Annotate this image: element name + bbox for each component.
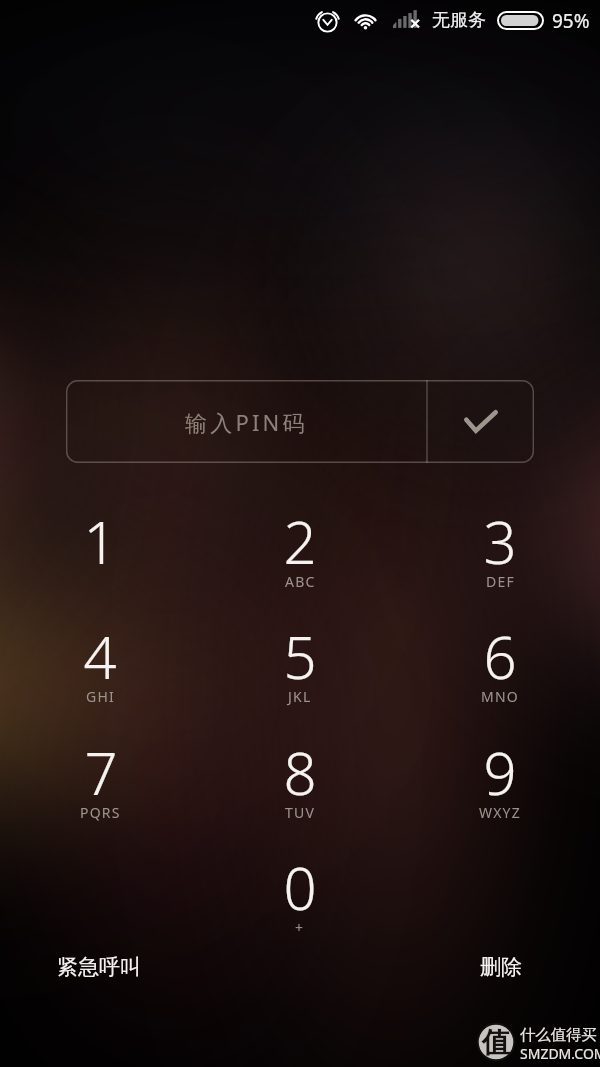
staticText: 2 xyxy=(283,502,317,581)
button[interactable]: Confirm PIN xyxy=(427,380,534,463)
button[interactable]: 9 xyxy=(400,729,600,844)
staticText: 3 xyxy=(483,502,517,581)
staticText: 9 xyxy=(483,733,517,812)
staticText: 无服务 xyxy=(432,9,486,32)
staticText: 95% xyxy=(552,8,590,34)
staticText: JKL xyxy=(288,687,312,706)
staticText: SMZDM.COM xyxy=(520,1044,600,1063)
staticText: 删除 xyxy=(480,954,522,980)
button[interactable]: 2 xyxy=(200,498,400,613)
button[interactable]: 5 xyxy=(200,613,400,728)
button[interactable]: 紧急呼叫 xyxy=(45,944,153,990)
button[interactable]: 1 xyxy=(0,498,200,613)
staticText: 什么值得买 xyxy=(520,1025,597,1045)
button[interactable]: 3 xyxy=(400,498,600,613)
staticText: 紧急呼叫 xyxy=(57,954,141,980)
staticText: 0 xyxy=(283,848,317,927)
staticText: GHI xyxy=(86,687,115,706)
staticText: 输入PIN码 xyxy=(185,407,308,437)
staticText: 1 xyxy=(83,502,117,581)
staticText: 4 xyxy=(83,617,117,696)
button[interactable]: 8 xyxy=(200,729,400,844)
staticText: 5 xyxy=(283,617,317,696)
button[interactable]: 删除 xyxy=(468,944,534,990)
staticText: PQRS xyxy=(80,803,121,822)
staticText: TUV xyxy=(285,803,316,822)
staticText: DEF xyxy=(486,572,515,591)
staticText: + xyxy=(295,918,305,937)
staticText: 7 xyxy=(84,733,118,812)
button[interactable]: 0 xyxy=(200,844,400,959)
staticText: 值 xyxy=(482,1025,510,1060)
staticText: 6 xyxy=(483,617,517,696)
staticText: MNO xyxy=(481,687,519,706)
staticText: WXYZ xyxy=(479,803,521,822)
button[interactable]: 6 xyxy=(400,613,600,728)
staticText: 8 xyxy=(283,733,317,812)
button[interactable]: 4 xyxy=(0,613,200,728)
button[interactable]: 7 xyxy=(0,729,200,844)
staticText: ABC xyxy=(285,572,316,591)
button[interactable]: 输入PIN码 xyxy=(66,380,427,463)
